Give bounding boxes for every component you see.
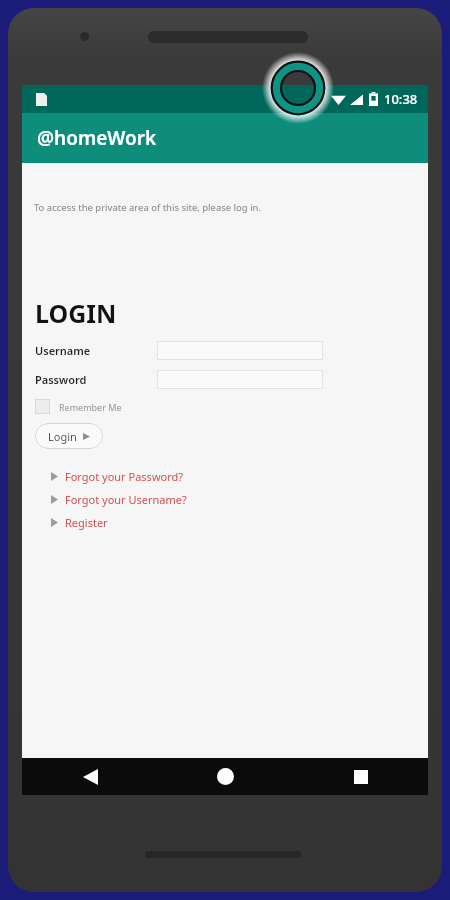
staticText: Forgot your Password? <box>65 469 184 484</box>
button[interactable]: @homeWork <box>22 113 428 163</box>
button[interactable]: Login <box>35 423 103 449</box>
staticText: 10:38 <box>384 90 418 108</box>
staticText: @homeWork <box>37 125 157 151</box>
button[interactable]: Home <box>158 758 293 795</box>
button[interactable] <box>157 341 323 360</box>
button[interactable]: Register <box>51 515 108 530</box>
staticText: Remember Me <box>59 401 122 413</box>
button[interactable]: Forgot your Password? <box>51 469 184 484</box>
button[interactable]: Forgot your Username? <box>51 492 187 507</box>
button[interactable]: Back <box>22 758 158 795</box>
button[interactable] <box>157 370 323 389</box>
staticText: Username <box>35 343 91 358</box>
button[interactable]: Recent apps <box>293 758 428 795</box>
staticText: LOGIN <box>35 296 117 330</box>
staticText: To access the private area of this site,… <box>34 201 261 214</box>
staticText: Forgot your Username? <box>65 492 187 507</box>
staticText: Password <box>35 372 87 387</box>
button[interactable]: Remember Me <box>35 399 122 414</box>
staticText: Register <box>65 515 108 530</box>
staticText: Login <box>48 429 77 444</box>
